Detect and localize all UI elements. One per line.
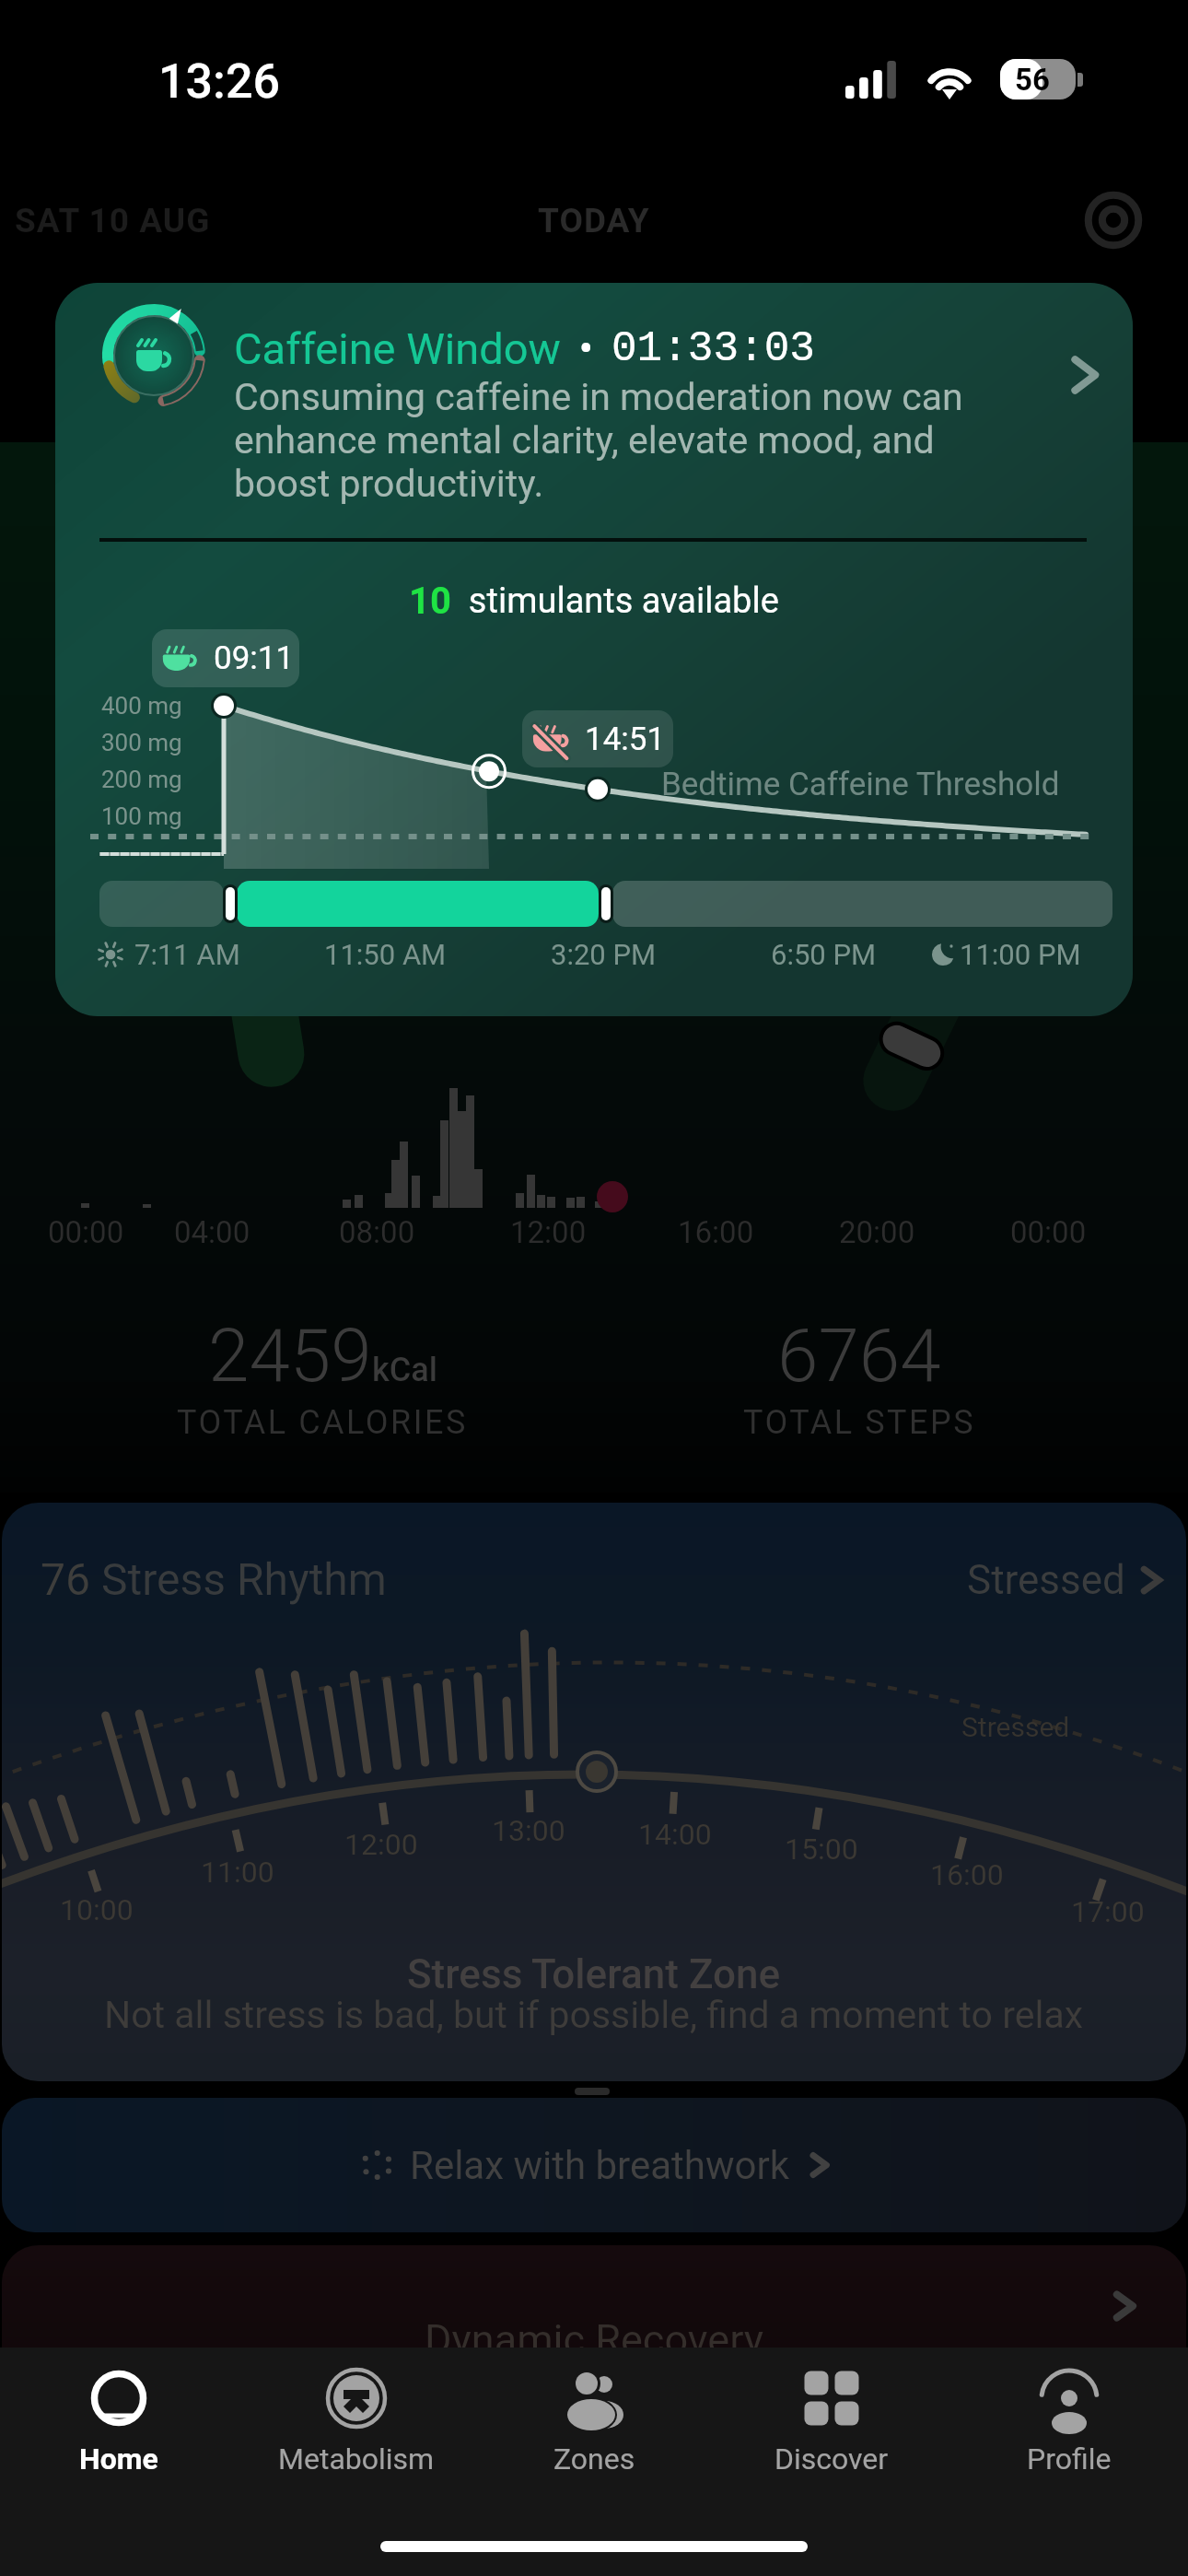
staticText: 10:00 [60,1892,134,1927]
staticText: 12:00 [510,1214,587,1250]
staticText: 00:00 [48,1214,124,1250]
staticText: Caffeine Window [234,323,561,374]
button[interactable]: Caffeine Window [55,283,1133,1016]
staticText: Discover [775,2441,889,2476]
staticText: Profile [1027,2441,1112,2476]
staticText: 400 mg [101,692,182,720]
button[interactable]: 76 [2,1503,1186,2081]
staticText: TOTAL CALORIES [177,1403,468,1442]
staticText: TODAY [538,201,650,240]
staticText: Home [79,2441,158,2476]
staticText: 09:11 [214,639,295,677]
staticText: • [561,327,611,370]
staticText: Stress Rhythm [101,1553,387,1605]
staticText: 10 [409,580,451,623]
staticText: 6:50 PM [771,938,877,971]
staticText: stimulants available [451,580,779,622]
staticText: Dynamic Recovery [425,2315,764,2364]
staticText: 14:51 [585,720,666,758]
staticText: Stressed [961,1711,1070,1743]
staticText: 17:00 [1071,1894,1145,1929]
staticText: 11:00 [201,1855,274,1890]
staticText: TOTAL STEPS [743,1403,976,1442]
staticText: 7:11 AM [134,938,240,971]
button[interactable]: Metabolism [238,2348,475,2576]
staticText: kCal [372,1351,437,1389]
other: Open caffeine details [1064,355,1104,395]
staticText: 3:20 PM [551,938,657,971]
button[interactable]: Discover [713,2348,950,2576]
staticText: 13:00 [492,1813,565,1848]
staticText: 11:00 PM [960,938,1081,971]
button[interactable]: Relax with breathwork [2,2098,1186,2232]
staticText: 00:00 [1010,1214,1087,1250]
staticText: 200 mg [101,766,182,793]
staticText: SAT 10 AUG [15,201,211,240]
staticText: Metabolism [278,2441,435,2476]
staticText: 08:00 [339,1214,415,1250]
staticText: 20:00 [839,1214,915,1250]
staticText: 300 mg [101,729,182,756]
staticText: 16:00 [930,1857,1004,1892]
staticText: 12:00 [344,1827,418,1862]
staticText: Consuming caffeine in moderation now can… [234,375,971,506]
staticText: 16:00 [678,1214,754,1250]
staticText: 100 mg [101,802,182,830]
staticText: Not all stress is bad, but if possible, … [104,1993,1084,2037]
button[interactable]: Profile [950,2348,1188,2576]
staticText: Stress Tolerant Zone [407,1950,781,1998]
button[interactable]: Home [0,2348,238,2576]
button[interactable]: Zones [475,2348,713,2576]
staticText: 76 [41,1553,101,1605]
staticText: Relax with breathwork [410,2143,789,2188]
staticText: 04:00 [174,1214,250,1250]
staticText: 13:26 [158,53,281,110]
staticText: 01:33:03 [611,325,815,373]
staticText: 2459 [208,1313,372,1399]
staticText: 6764 [777,1313,941,1399]
staticText: Bedtime Caffeine Threshold [661,766,1060,803]
staticText: 56 [1015,62,1050,98]
staticText: 14:00 [638,1817,712,1852]
staticText: Zones [553,2441,635,2476]
staticText: Stressed [967,1556,1125,1604]
button[interactable]: Activity rings [1081,193,1146,247]
staticText: 15:00 [785,1832,858,1867]
staticText: 11:50 AM [324,938,447,971]
